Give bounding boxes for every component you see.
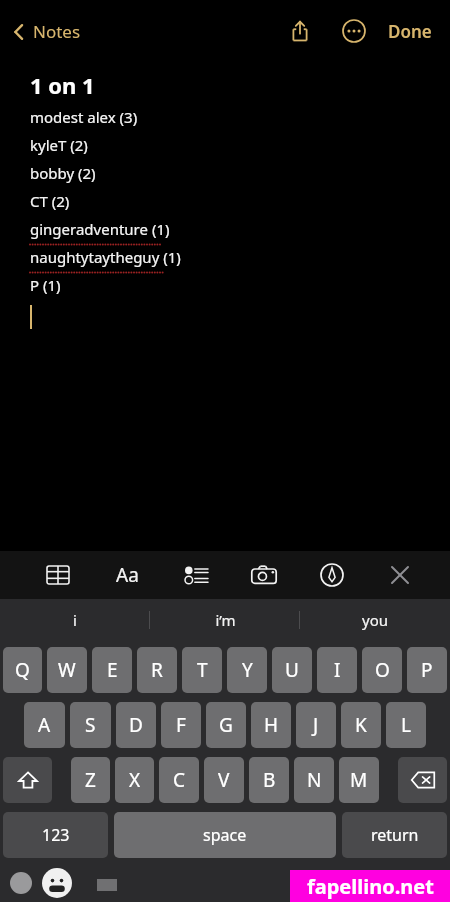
button[interactable]: Backspace xyxy=(398,757,447,803)
button[interactable]: Share xyxy=(280,11,320,51)
staticText: T xyxy=(197,657,208,683)
staticText: K xyxy=(355,712,367,738)
button[interactable]: R xyxy=(137,647,177,693)
button[interactable]: W xyxy=(47,647,87,693)
button[interactable]: Markup xyxy=(312,555,352,595)
button[interactable]: E xyxy=(92,647,132,693)
staticText: return xyxy=(371,824,419,846)
button[interactable]: D xyxy=(116,702,156,748)
button[interactable]: M xyxy=(339,757,379,803)
button[interactable]: Notes xyxy=(12,20,81,43)
staticText: O xyxy=(375,657,390,683)
button[interactable]: X xyxy=(115,757,154,803)
button[interactable]: H xyxy=(251,702,291,748)
button[interactable]: Y xyxy=(227,647,267,693)
button[interactable]: I xyxy=(317,647,357,693)
button[interactable]: Done xyxy=(384,14,436,49)
button[interactable]: U xyxy=(272,647,312,693)
staticText: Notes xyxy=(33,20,81,43)
staticText: S xyxy=(85,712,96,738)
staticText: Aa xyxy=(116,562,139,588)
staticText: Q xyxy=(15,657,30,683)
staticText: M xyxy=(350,767,368,793)
staticText: Z xyxy=(85,767,96,793)
button[interactable]: K xyxy=(341,702,381,748)
button[interactable]: Close keyboard xyxy=(380,555,420,595)
button[interactable]: Recent xyxy=(94,873,120,893)
button[interactable]: return xyxy=(342,812,447,858)
button[interactable]: Globe xyxy=(4,866,38,900)
staticText: you xyxy=(362,610,388,630)
staticText: kyleT (2) xyxy=(30,135,88,155)
button[interactable]: Text format xyxy=(107,555,147,595)
staticText: I xyxy=(334,657,341,683)
staticText: Y xyxy=(242,657,253,683)
staticText: V xyxy=(218,767,230,793)
button[interactable]: Table xyxy=(38,555,78,595)
staticText: CT (2) xyxy=(30,191,70,211)
staticText: C xyxy=(173,767,186,793)
button[interactable]: More options xyxy=(334,11,374,51)
staticText: P (1) xyxy=(30,275,61,295)
staticText: P xyxy=(421,657,433,683)
staticText: H xyxy=(264,712,279,738)
button[interactable]: B xyxy=(249,757,289,803)
button[interactable]: Emoji xyxy=(38,864,76,902)
button[interactable]: i’m xyxy=(150,599,300,641)
staticText: W xyxy=(58,657,76,683)
staticText: D xyxy=(129,712,143,738)
staticText: Done xyxy=(388,20,432,43)
staticText: bobby (2) xyxy=(30,163,96,183)
staticText: i xyxy=(73,610,77,630)
staticText: N xyxy=(307,767,322,793)
staticText: L xyxy=(401,712,411,738)
button[interactable]: F xyxy=(161,702,201,748)
button[interactable]: T xyxy=(182,647,222,693)
button[interactable]: N xyxy=(294,757,334,803)
button[interactable]: L xyxy=(386,702,426,748)
button[interactable]: S xyxy=(70,702,111,748)
staticText: space xyxy=(203,824,247,846)
button[interactable]: J xyxy=(296,702,336,748)
staticText: G xyxy=(219,712,233,738)
button[interactable]: Shift xyxy=(3,757,52,803)
staticText: modest alex (3) xyxy=(30,107,138,127)
button[interactable]: O xyxy=(362,647,402,693)
button[interactable]: Camera xyxy=(244,555,284,595)
button[interactable]: Z xyxy=(71,757,110,803)
button[interactable]: space xyxy=(114,812,336,858)
button[interactable]: P xyxy=(407,647,447,693)
button[interactable]: A xyxy=(24,702,65,748)
staticText: i’m xyxy=(215,610,236,630)
button[interactable]: Checklist xyxy=(176,555,216,595)
staticText: A xyxy=(38,712,51,738)
staticText: 123 xyxy=(42,824,70,846)
button[interactable]: G xyxy=(206,702,246,748)
staticText: fapellino.net xyxy=(307,873,434,900)
staticText: J xyxy=(313,712,319,738)
button[interactable]: V xyxy=(204,757,244,803)
staticText: F xyxy=(176,712,186,738)
staticText: U xyxy=(285,657,299,683)
button[interactable]: i xyxy=(0,599,150,641)
staticText: X xyxy=(129,767,141,793)
button[interactable]: C xyxy=(159,757,199,803)
staticText: B xyxy=(263,767,276,793)
staticText: E xyxy=(107,657,118,683)
staticText: R xyxy=(151,657,163,683)
button[interactable]: Q xyxy=(3,647,42,693)
staticText: naughtytaytheguy (1) xyxy=(30,247,181,267)
button[interactable]: 123 xyxy=(3,812,108,858)
staticText: 1 on 1 xyxy=(30,70,95,100)
button[interactable]: you xyxy=(300,599,450,641)
staticText: gingeradventure (1) xyxy=(30,219,170,239)
